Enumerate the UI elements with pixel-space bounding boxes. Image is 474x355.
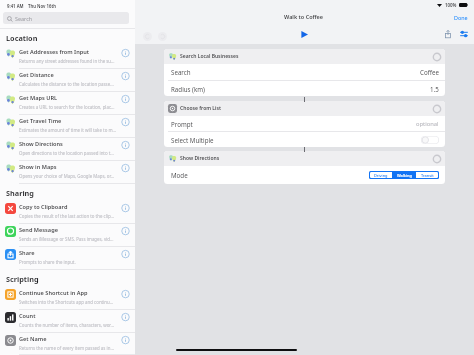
staticText: Calculates the distance to the location … [19,81,114,87]
button[interactable]: Show Directions [0,138,135,161]
button[interactable]: Undo [143,32,152,41]
staticText: Get Name [19,335,47,343]
other: Info [120,335,131,346]
other: Info [120,48,131,59]
button[interactable]: Get Distance [0,69,135,92]
staticText: Continue Shortcut in App [19,289,88,297]
button[interactable]: Run shortcut [301,31,308,38]
staticText: Returns any street addresses found in th… [19,58,115,64]
staticText: Creates a URL to search for the location… [19,104,115,110]
button[interactable]: Settings [459,29,469,39]
staticText: Copies the result of the last action to … [19,213,115,219]
staticText: Coffee [420,68,439,76]
button[interactable]: Choose from List [164,101,445,116]
button[interactable]: Delete action [433,105,441,113]
other: Info [120,94,131,105]
button[interactable]: Transit [416,172,438,178]
staticText: Driving [374,173,388,178]
staticText: 100% [445,2,457,8]
staticText: Get Maps URL [19,94,58,102]
staticText: Switches into the Shortcuts app and cont… [19,299,114,305]
staticText: optional [416,120,439,128]
other: Info [120,312,131,323]
staticText: Transit [421,173,434,178]
staticText: Show Directions [19,140,63,148]
other: Info [120,226,131,237]
staticText: Walking [397,173,412,178]
staticText: Copy to Clipboard [19,203,68,211]
button[interactable]: Share [443,29,453,39]
staticText: Thu Nov 16th [28,3,56,9]
button[interactable]: Select Multiple toggle [421,136,439,144]
staticText: Estimates the amount of time it will tak… [19,127,117,133]
staticText: Select Multiple [171,136,214,144]
other: Info [120,249,131,260]
other: Info [120,71,131,82]
staticText: Send Message [19,226,58,234]
other: Info [120,163,131,174]
other: Info [120,289,131,300]
staticText: Get Addresses from Input [19,48,90,56]
staticText: Show in Maps [19,163,57,171]
other: Info [120,117,131,128]
button[interactable]: Walking [393,172,415,178]
staticText: Returns the name of every item passed as… [19,345,114,351]
other: Info [120,140,131,151]
staticText: Share [19,249,35,257]
button[interactable]: Copy to Clipboard [0,201,135,224]
staticText: Count [19,312,36,320]
button[interactable]: Get Addresses from Input [0,46,135,69]
button[interactable]: Delete action [433,155,441,163]
staticText: 9:41 AM [7,3,24,9]
button[interactable]: Show in Maps [0,161,135,184]
staticText: Search [15,15,33,22]
staticText: Show Directions [180,155,220,162]
staticText: Prompt [171,120,193,128]
staticText: Prompts to share the input. [19,259,76,265]
button[interactable]: Select Multiple [164,132,445,147]
button[interactable]: Delete action [433,53,441,61]
button[interactable]: Send Message [0,224,135,247]
staticText: Opens your choice of Maps, Google Maps, … [19,173,115,179]
staticText: 1.5 [430,85,439,93]
staticText: Scripting [6,274,39,284]
button[interactable]: Redo [158,32,167,41]
staticText: Counts the number of items, characters, … [19,322,114,328]
staticText: Open directions to the location passed i… [19,150,114,156]
staticText: Choose from List [180,105,221,112]
other: Info [120,203,131,214]
button[interactable]: Share [0,247,135,270]
button[interactable]: Prompt [164,116,445,131]
staticText: Walk to Coffee [284,13,324,20]
button[interactable]: Show Directions [164,151,445,166]
button[interactable]: Driving [370,172,392,178]
button[interactable]: Get Name [0,333,135,355]
button[interactable]: Continue Shortcut in App [0,287,135,310]
button[interactable]: Count [0,310,135,333]
button[interactable]: Get Maps URL [0,92,135,115]
button[interactable]: Get Travel Time [0,115,135,138]
staticText: Mode [171,171,188,179]
staticText: Sharing [6,188,34,198]
button[interactable]: Search Local Businesses [164,49,445,64]
staticText: Radius (km) [171,85,205,93]
staticText: Get Distance [19,71,54,79]
button[interactable]: Radius (km) [164,81,445,96]
staticText: Search [171,68,191,76]
staticText: Get Travel Time [19,117,62,125]
staticText: Location [6,33,38,43]
staticText: Search Local Businesses [180,53,239,60]
button[interactable]: Mode [164,166,445,184]
button[interactable]: Search [164,64,445,80]
button[interactable]: Search [3,12,129,24]
button[interactable]: Done [454,14,468,21]
staticText: Sends an iMessage or SMS. Pass images, v… [19,236,114,242]
